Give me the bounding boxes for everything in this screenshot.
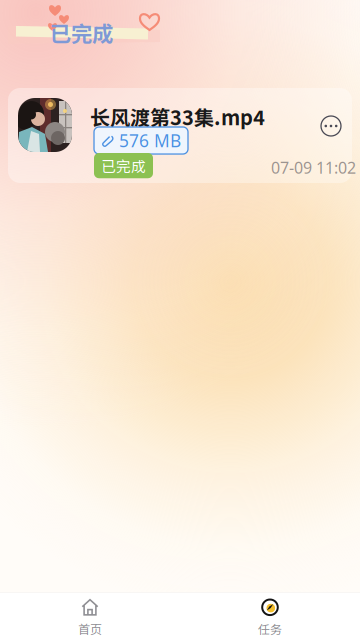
button[interactable]: 任务 [180,592,360,640]
staticText: 任务 [258,620,282,637]
staticText: 07-09 11:02 [271,157,356,178]
staticText: 长风渡第33集.mp4 [90,102,265,131]
button[interactable]: 长风渡第33集.mp4 [8,88,352,183]
staticText: 首页 [78,620,102,637]
staticText: 已完成 [101,155,146,176]
staticText: 576 MB [119,129,181,152]
button[interactable]: More options [321,116,341,136]
button[interactable]: 首页 [0,592,180,640]
staticText: 已完成 [50,17,113,48]
